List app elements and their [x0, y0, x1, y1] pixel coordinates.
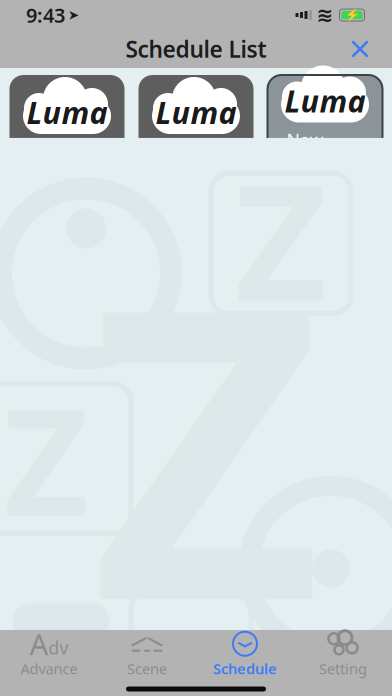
button[interactable]: Luma	[9, 75, 124, 170]
staticText: Advance	[20, 659, 77, 678]
staticText: Schedule	[213, 659, 277, 678]
staticText: Setting	[319, 659, 367, 678]
staticText: Luma	[26, 92, 107, 132]
button[interactable]: Luma	[138, 75, 253, 170]
staticText: Luma	[155, 92, 236, 132]
staticText: Schedule List	[125, 34, 266, 64]
button[interactable]: Luma	[267, 75, 382, 170]
button[interactable]: Schedule	[196, 630, 294, 678]
staticText: ≋	[316, 4, 333, 26]
button[interactable]: Setting	[294, 630, 392, 678]
staticText: Z	[234, 132, 327, 345]
staticText: Z	[3, 361, 88, 556]
staticText: ➤	[68, 7, 79, 22]
staticText: New Schedule	[286, 128, 363, 174]
staticText: ⚡	[344, 8, 359, 22]
staticText: Z	[90, 178, 322, 696]
staticText: dv	[48, 636, 68, 659]
staticText: 9:43	[26, 2, 65, 28]
staticText: Scene	[127, 659, 167, 678]
button[interactable]: Close	[338, 30, 382, 68]
button[interactable]: A	[0, 630, 98, 678]
staticText: A	[29, 624, 48, 663]
button[interactable]: Scene	[98, 630, 196, 678]
staticText: Luma	[284, 80, 365, 121]
